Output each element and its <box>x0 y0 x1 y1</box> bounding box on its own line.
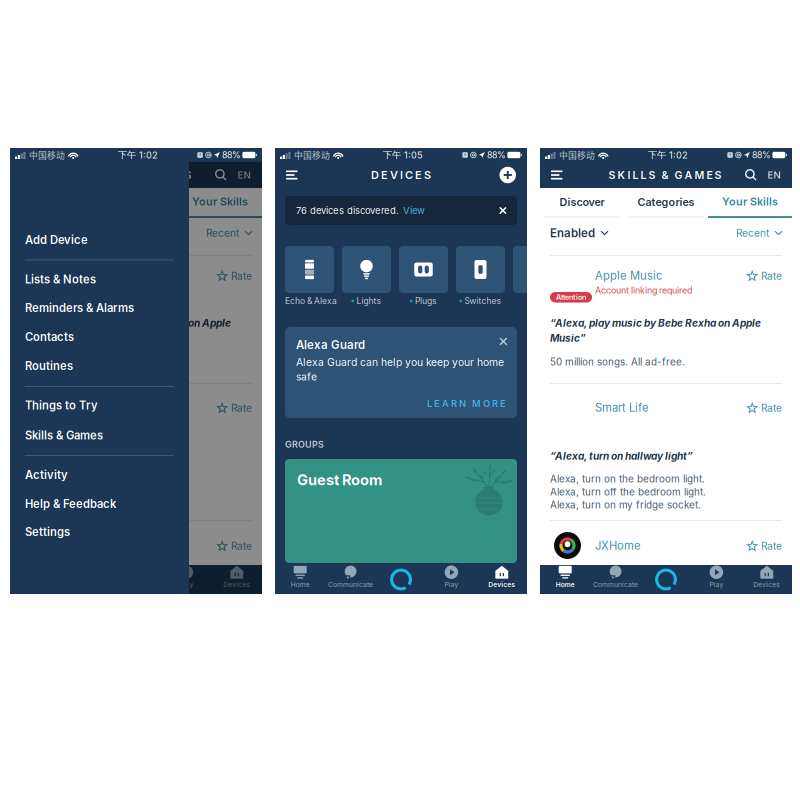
staticText: Add Device <box>25 233 88 247</box>
staticText: Help & Feedback <box>25 497 116 511</box>
button[interactable]: Switches <box>456 246 505 306</box>
staticText: Settings <box>25 525 70 539</box>
staticText: Lists & Notes <box>25 273 96 286</box>
button[interactable]: Rate <box>747 540 782 552</box>
staticText: Activity <box>25 468 68 482</box>
staticText: 50 million songs. All ad-free. <box>20 356 155 368</box>
button[interactable]: Lists & Notes <box>10 265 189 293</box>
button[interactable]: Alexa <box>641 565 691 594</box>
staticText: 中国移动 <box>29 149 65 161</box>
button[interactable]: Skills & Games <box>10 421 189 449</box>
button[interactable]: Activity <box>10 461 189 489</box>
button[interactable]: Contacts <box>10 323 189 351</box>
staticText: 88% <box>222 150 241 160</box>
button[interactable]: Home <box>540 565 590 594</box>
button[interactable]: Enabled <box>550 226 608 240</box>
button[interactable]: Play <box>426 565 477 594</box>
button[interactable]: Search <box>208 162 234 188</box>
staticText: Account linking required <box>595 285 692 296</box>
button[interactable]: Dismiss <box>500 207 506 214</box>
button[interactable]: Play <box>161 565 212 594</box>
button[interactable]: Things to Try <box>10 391 189 419</box>
staticText: Skills & Games <box>25 429 103 442</box>
button[interactable]: Add Device <box>10 226 189 254</box>
staticText: Play <box>444 580 458 589</box>
button[interactable]: Rate <box>217 402 252 414</box>
button[interactable]: Menu <box>540 162 592 188</box>
staticText: Switches <box>465 296 502 306</box>
button[interactable]: Alexa <box>376 565 426 594</box>
staticText: Communicate <box>328 580 373 589</box>
staticText: Rate <box>231 402 252 414</box>
button[interactable]: Communicate <box>325 565 376 594</box>
staticText: Smart Life <box>595 401 649 415</box>
button[interactable]: Discover <box>540 188 624 217</box>
staticText: Routines <box>25 359 73 373</box>
button[interactable]: Rate <box>747 270 782 282</box>
staticText: 88% <box>752 150 771 160</box>
staticText: D E V I C E S <box>371 168 431 182</box>
button[interactable]: View <box>399 205 425 216</box>
button[interactable]: Routines <box>10 352 189 380</box>
button[interactable]: Play <box>691 565 742 594</box>
staticText: EN <box>237 169 250 181</box>
button[interactable]: Your Skills <box>178 188 262 217</box>
button[interactable]: Add device <box>479 162 527 188</box>
button[interactable]: Enabled <box>20 226 78 240</box>
button[interactable]: Menu <box>275 162 323 188</box>
button[interactable]: Lights <box>342 246 391 306</box>
staticText: Alexa, turn off the bedroom light. <box>550 486 706 498</box>
staticText: Home <box>291 580 310 589</box>
button[interactable]: Reminders & Alarms <box>10 294 189 322</box>
staticText: Your Skills <box>722 195 778 208</box>
staticText: JXHome <box>595 539 641 553</box>
staticText: Enabled <box>550 226 595 240</box>
staticText: Reminders & Alarms <box>25 301 134 315</box>
button[interactable]: Settings <box>10 518 189 546</box>
button[interactable]: Devices <box>212 565 262 594</box>
button[interactable]: EN <box>234 162 254 188</box>
button[interactable]: Recent <box>736 227 782 239</box>
staticText: 中国移动 <box>559 149 595 161</box>
button[interactable]: Home <box>275 565 325 594</box>
button[interactable]: Recent <box>206 227 252 239</box>
staticText: 76 devices discovered. <box>296 205 399 216</box>
staticText: Apple Music <box>65 269 132 283</box>
button[interactable]: L E A R N M O R E <box>296 398 506 409</box>
button[interactable]: Rate <box>217 540 252 552</box>
button[interactable]: Help & Feedback <box>10 490 189 518</box>
button[interactable]: Communicate <box>590 565 641 594</box>
button[interactable]: The <box>513 246 562 306</box>
staticText: Alexa, turn on the bedroom light. <box>20 473 175 485</box>
button[interactable]: Echo & Alexa <box>285 246 334 306</box>
button[interactable]: Search <box>738 162 764 188</box>
button[interactable]: Devices <box>477 565 527 594</box>
staticText: Communicate <box>593 580 638 589</box>
button[interactable]: Plugs <box>399 246 448 306</box>
button[interactable]: Dismiss <box>500 338 507 345</box>
staticText: “Alexa, turn on hallway light” <box>550 450 693 462</box>
button[interactable]: Rate <box>217 270 252 282</box>
staticText: Devices <box>223 580 250 589</box>
button[interactable]: Rate <box>747 402 782 414</box>
staticText: Alexa Guard can help you keep your home <box>296 356 504 368</box>
staticText: Plugs <box>415 296 437 306</box>
button[interactable]: Categories <box>624 188 708 217</box>
staticText: Smart Life <box>65 401 119 415</box>
button[interactable]: Your Skills <box>708 188 792 217</box>
button[interactable]: EN <box>764 162 784 188</box>
staticText: 88% <box>222 150 241 160</box>
button[interactable]: Devices <box>742 565 792 594</box>
